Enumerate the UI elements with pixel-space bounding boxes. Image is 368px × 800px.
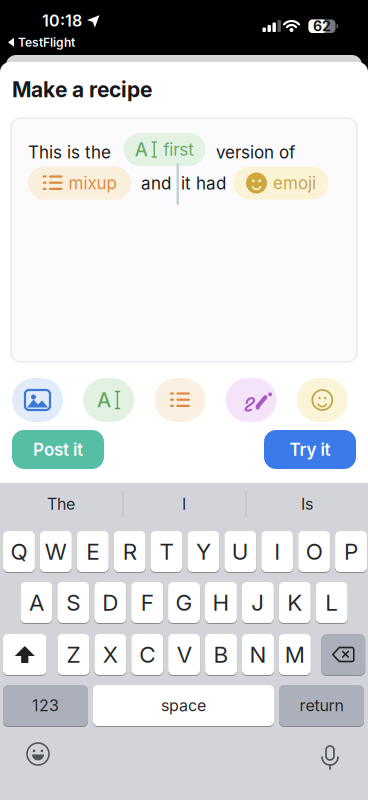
button[interactable]: 123: [3, 685, 88, 726]
button[interactable]: Try it: [264, 430, 356, 469]
staticText: B: [213, 641, 228, 668]
button[interactable]: Q: [3, 531, 35, 572]
staticText: 123: [32, 696, 59, 715]
staticText: Make a recipe: [12, 77, 152, 102]
staticText: Post it: [33, 439, 83, 460]
button[interactable]: X: [94, 634, 126, 675]
staticText: A: [29, 589, 44, 616]
button[interactable]: Add image: [12, 378, 63, 422]
button[interactable]: P: [335, 531, 367, 572]
staticText: 62: [313, 18, 331, 35]
staticText: N: [249, 641, 266, 668]
staticText: H: [212, 589, 229, 616]
staticText: A: [135, 138, 148, 161]
staticText: it had: [181, 173, 226, 194]
button[interactable]: The: [11, 489, 111, 519]
button[interactable]: U: [224, 531, 256, 572]
staticText: C: [139, 641, 155, 668]
button[interactable]: Is: [257, 489, 357, 519]
staticText: Is: [301, 494, 313, 514]
staticText: M: [285, 641, 305, 668]
button[interactable]: T: [151, 531, 182, 572]
button[interactable]: Back to TestFlight: [8, 35, 75, 49]
staticText: T: [159, 538, 173, 565]
button[interactable]: Emoji: [297, 378, 348, 422]
button[interactable]: C: [131, 634, 163, 675]
button[interactable]: Y: [187, 531, 219, 572]
button[interactable]: B: [205, 634, 237, 675]
button[interactable]: M: [279, 634, 311, 675]
staticText: W: [45, 538, 67, 565]
staticText: L: [325, 589, 338, 616]
staticText: space: [161, 696, 206, 715]
button[interactable]: F: [131, 582, 163, 623]
button[interactable]: H: [205, 582, 237, 623]
staticText: mixup: [68, 173, 116, 193]
button[interactable]: E: [77, 531, 109, 572]
button[interactable]: Draw: [226, 378, 277, 422]
staticText: emoji: [273, 173, 316, 193]
staticText: X: [103, 641, 118, 668]
staticText: P: [344, 538, 358, 565]
staticText: Z: [66, 641, 80, 668]
staticText: Y: [196, 538, 211, 565]
staticText: E: [86, 538, 99, 565]
staticText: first: [163, 139, 194, 160]
button[interactable]: I: [134, 489, 234, 519]
button[interactable]: Z: [57, 634, 89, 675]
staticText: Q: [10, 538, 27, 565]
staticText: I: [182, 494, 186, 514]
button[interactable]: List: [154, 378, 205, 422]
staticText: This is the: [28, 142, 111, 163]
staticText: return: [299, 696, 343, 715]
staticText: I: [274, 538, 280, 565]
button[interactable]: Shift: [3, 634, 46, 675]
staticText: F: [141, 589, 154, 616]
button[interactable]: K: [279, 582, 311, 623]
button[interactable]: V: [168, 634, 200, 675]
staticText: A: [97, 388, 111, 412]
button[interactable]: L: [316, 582, 348, 623]
button[interactable]: A: [20, 582, 52, 623]
button[interactable]: return: [279, 685, 364, 726]
button[interactable]: S: [57, 582, 89, 623]
button[interactable]: Dictate: [310, 733, 350, 773]
button[interactable]: Post it: [12, 430, 104, 469]
staticText: The: [47, 494, 75, 514]
staticText: J: [251, 589, 264, 616]
staticText: D: [102, 589, 118, 616]
button[interactable]: Emoji: [18, 734, 58, 774]
staticText: TestFlight: [18, 35, 75, 49]
button[interactable]: Delete: [321, 634, 365, 675]
staticText: R: [123, 538, 137, 565]
staticText: K: [287, 589, 302, 616]
button[interactable]: Text: [83, 378, 134, 422]
staticText: U: [232, 538, 249, 565]
staticText: O: [306, 538, 323, 565]
staticText: S: [66, 589, 80, 616]
button[interactable]: D: [94, 582, 126, 623]
staticText: 10:18: [42, 11, 82, 30]
button[interactable]: I: [261, 531, 293, 572]
button[interactable]: space: [93, 685, 274, 726]
button[interactable]: R: [114, 531, 146, 572]
button[interactable]: W: [40, 531, 72, 572]
staticText: and: [141, 173, 171, 194]
button[interactable]: Recipe text: [11, 118, 357, 362]
button[interactable]: N: [242, 634, 274, 675]
button[interactable]: G: [168, 582, 200, 623]
staticText: version of: [216, 142, 295, 163]
staticText: Try it: [289, 439, 330, 460]
button[interactable]: J: [242, 582, 274, 623]
staticText: V: [177, 641, 192, 668]
button[interactable]: O: [298, 531, 330, 572]
staticText: G: [175, 589, 192, 616]
